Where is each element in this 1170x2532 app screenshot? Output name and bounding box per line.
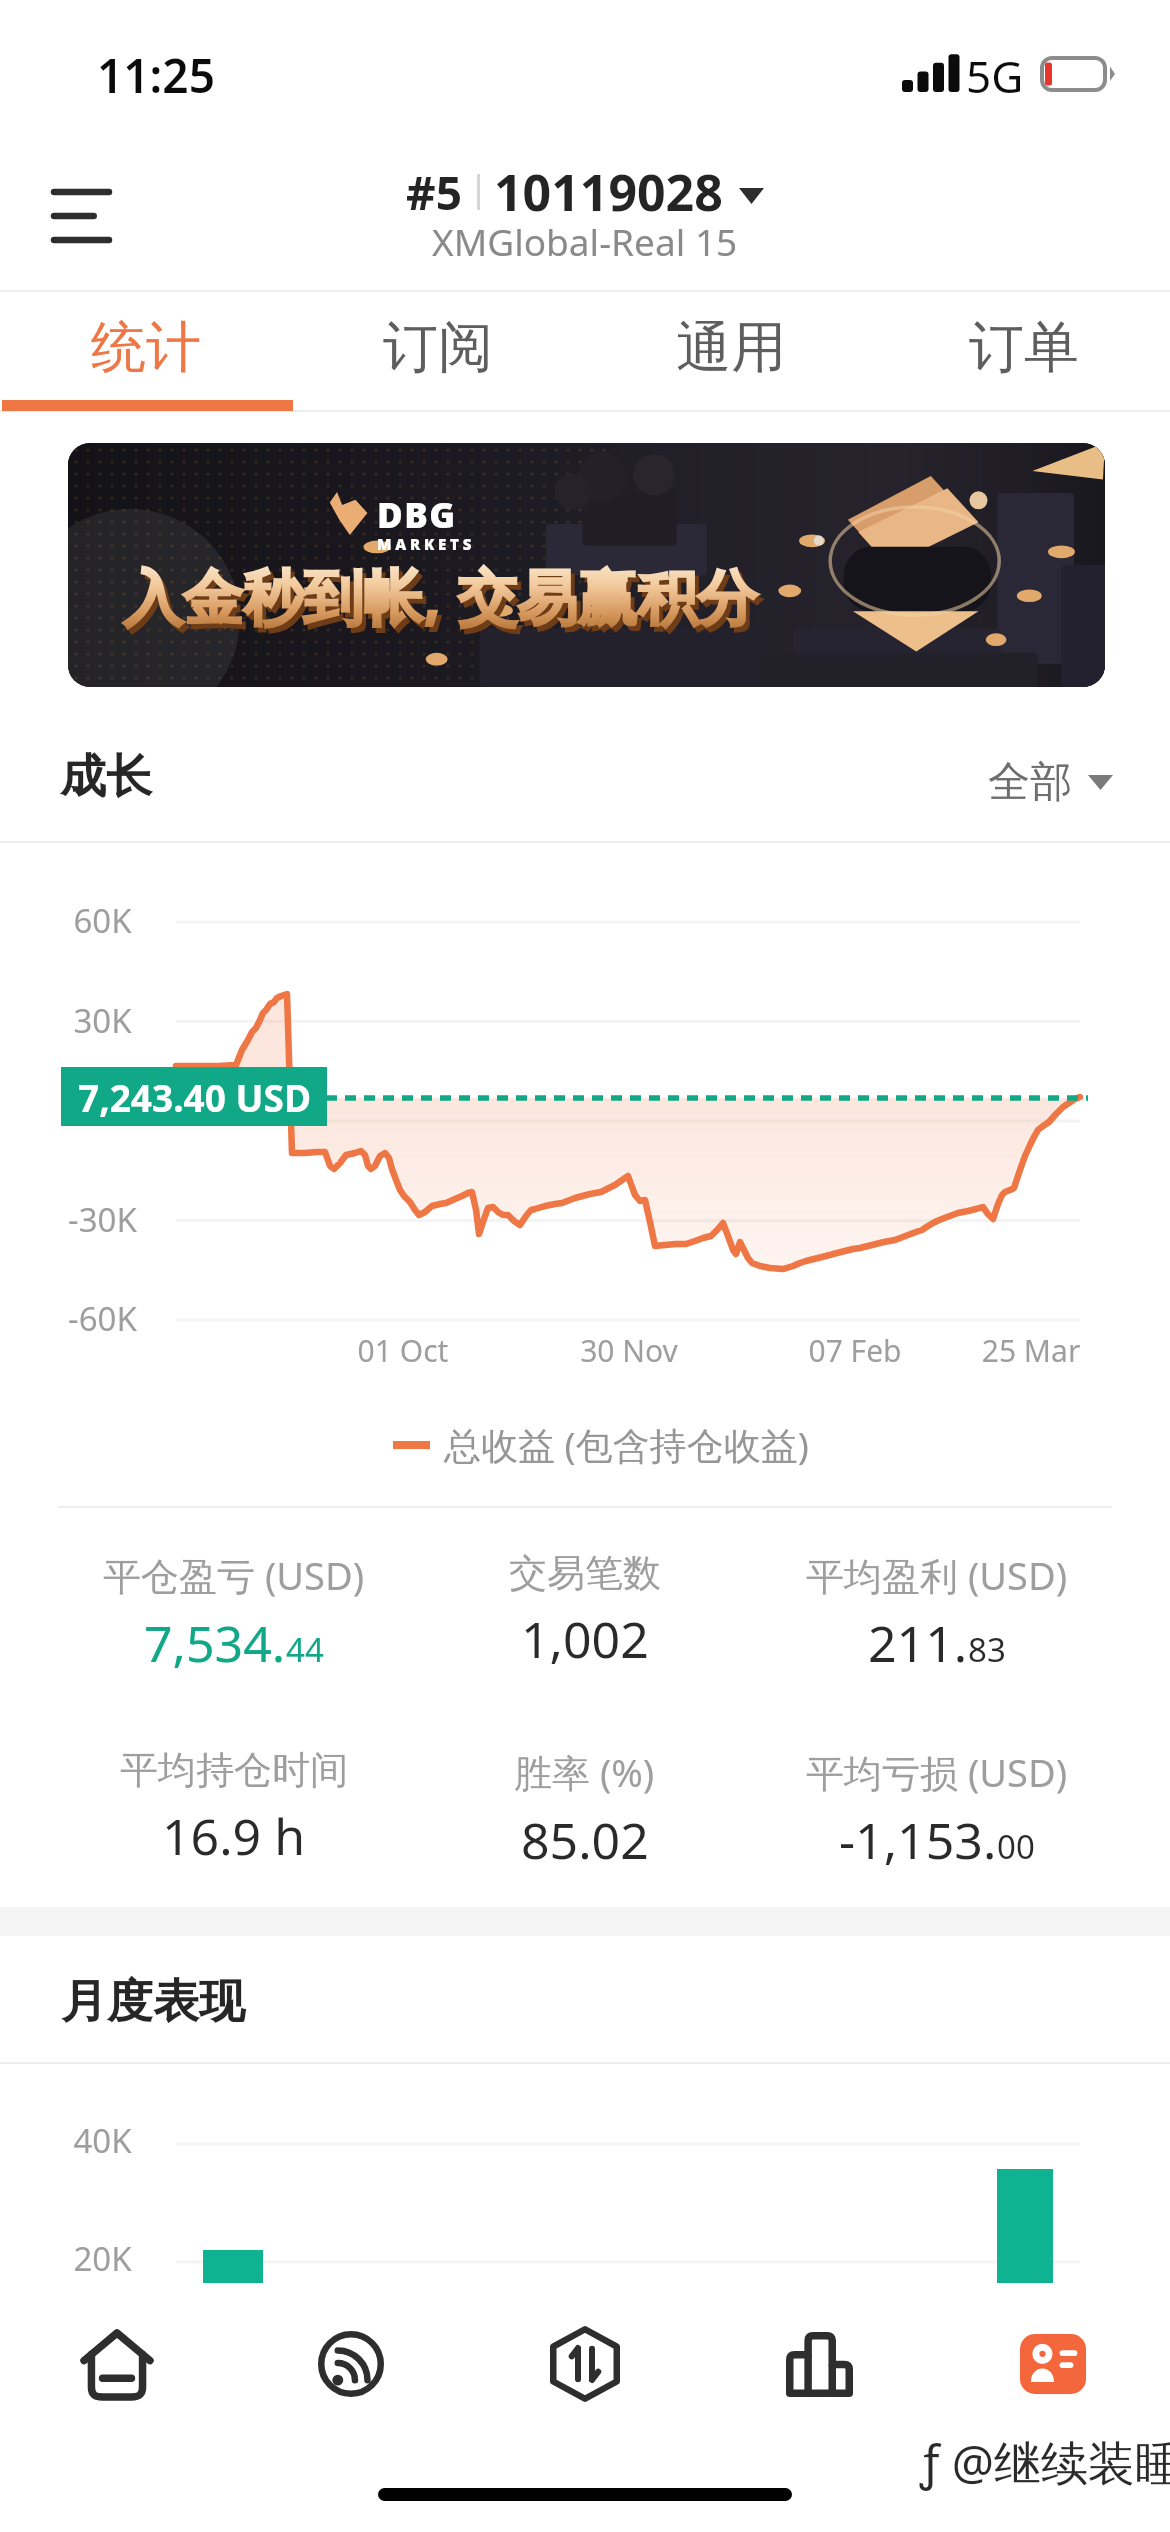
staticText: 30 Nov bbox=[509, 1330, 749, 1371]
button[interactable]: Home bbox=[0, 2305, 234, 2423]
staticText: 平仓盈亏 (USD) bbox=[103, 1549, 365, 1601]
staticText: 平均盈利 (USD) bbox=[806, 1549, 1068, 1601]
button[interactable]: Statistics bbox=[702, 2305, 936, 2423]
staticText: 16.9 h bbox=[162, 1802, 306, 1870]
staticText: DBG bbox=[377, 491, 457, 539]
staticText: -30K bbox=[40, 1197, 165, 1242]
staticText: 5G bbox=[966, 46, 1024, 106]
staticText: 平均亏损 (USD) bbox=[806, 1746, 1068, 1798]
staticText: 20K bbox=[40, 2236, 165, 2281]
staticText: 月度表现 bbox=[61, 1973, 245, 2031]
staticText: 83 bbox=[968, 1627, 1006, 1672]
staticText: #5 bbox=[406, 161, 463, 224]
staticText: 平均持仓时间 bbox=[120, 1746, 348, 1794]
staticText: 订单 bbox=[969, 313, 1079, 382]
button[interactable]: 全部 bbox=[988, 756, 1113, 809]
staticText: 44 bbox=[286, 1627, 324, 1672]
staticText: 1,002 bbox=[521, 1605, 649, 1673]
staticText: ƒ @继续装睡 bbox=[920, 2430, 1170, 2494]
staticText: XMGlobal-Real 15 bbox=[432, 216, 738, 266]
staticText: -60K bbox=[40, 1296, 165, 1341]
button[interactable]: Account bbox=[936, 2305, 1170, 2423]
button[interactable]: 统计 bbox=[0, 292, 292, 402]
staticText: 85.02 bbox=[521, 1806, 649, 1874]
staticText: 成长 bbox=[60, 748, 152, 806]
staticText: 胜率 (%) bbox=[514, 1746, 655, 1798]
button[interactable]: 订阅 bbox=[292, 292, 584, 402]
button[interactable]: Trade bbox=[468, 2305, 702, 2423]
staticText: 统计 bbox=[91, 313, 201, 382]
button[interactable]: 通用 bbox=[584, 292, 877, 402]
staticText: 07 Feb bbox=[735, 1330, 975, 1371]
staticText: 入金秒到帐, 交易赢积分 bbox=[123, 555, 758, 637]
staticText: 通用 bbox=[676, 313, 786, 382]
staticText: 25 Mar bbox=[911, 1330, 1151, 1371]
staticText: 60K bbox=[40, 898, 165, 943]
staticText: 入金秒到帐, 交易赢积分 bbox=[127, 560, 762, 642]
staticText: -1,153. bbox=[839, 1806, 997, 1874]
button[interactable]: Signals bbox=[234, 2305, 468, 2423]
staticText: 211. bbox=[868, 1609, 968, 1677]
staticText: 总收益 (包含持仓收益) bbox=[444, 1419, 809, 1470]
button[interactable]: Promotion banner bbox=[68, 443, 1105, 687]
staticText: 全部 bbox=[988, 756, 1072, 809]
staticText: 订阅 bbox=[383, 313, 493, 382]
staticText: 7,534. bbox=[144, 1609, 286, 1677]
staticText: 10119028 bbox=[494, 158, 723, 226]
staticText: 40K bbox=[40, 2118, 165, 2163]
staticText: MARKETS bbox=[377, 534, 476, 554]
staticText: 11:25 bbox=[97, 44, 215, 107]
button[interactable]: Menu bbox=[20, 156, 140, 276]
button[interactable]: 订单 bbox=[877, 292, 1170, 402]
staticText: 30K bbox=[40, 998, 165, 1043]
staticText: 交易笔数 bbox=[509, 1549, 661, 1597]
staticText: 01 Oct bbox=[283, 1330, 523, 1371]
staticText: 00 bbox=[997, 1824, 1035, 1869]
staticText: 7,243.40 USD bbox=[78, 1072, 311, 1122]
